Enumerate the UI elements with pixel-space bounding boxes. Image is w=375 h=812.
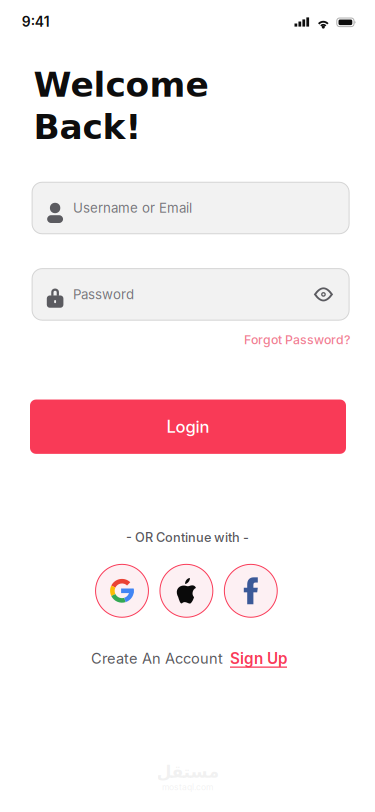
button[interactable]: Login [30, 400, 346, 454]
button[interactable]: Sign Up [230, 649, 287, 668]
staticText: Forgot Password? [244, 332, 350, 347]
button[interactable]: Continue with Apple [160, 564, 213, 617]
button[interactable]: Continue with Facebook [224, 564, 277, 617]
staticText: mostaql.com [162, 782, 213, 792]
staticText: Welcome Back! [33, 65, 208, 147]
staticText: 9:41 [22, 13, 50, 30]
staticText: Create An Account [91, 650, 223, 667]
button[interactable]: Continue with Google [96, 564, 148, 617]
staticText: Login [166, 417, 209, 437]
staticText: - OR Continue with - [126, 530, 249, 545]
staticText: مستقل [156, 762, 219, 782]
button[interactable]: Show password [314, 287, 333, 302]
button[interactable]: Forgot Password? [230, 330, 350, 350]
staticText: Sign Up [230, 649, 287, 668]
staticText: Username or Email [73, 200, 192, 216]
staticText: Password [73, 286, 134, 302]
